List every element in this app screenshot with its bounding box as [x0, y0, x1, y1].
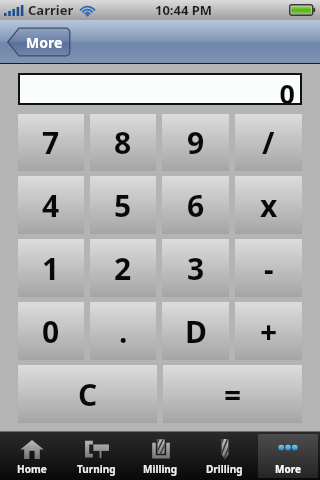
- staticText: -: [264, 248, 274, 289]
- button[interactable]: =: [163, 365, 302, 423]
- button[interactable]: 8: [90, 114, 156, 171]
- staticText: 5: [114, 185, 132, 226]
- staticText: /: [262, 122, 275, 163]
- staticText: .: [119, 311, 128, 352]
- staticText: 6: [187, 185, 205, 226]
- button[interactable]: x: [235, 176, 302, 234]
- button[interactable]: .: [90, 302, 156, 360]
- button[interactable]: Turning: [66, 434, 126, 478]
- staticText: Home: [17, 462, 47, 476]
- staticText: More: [275, 462, 301, 476]
- staticText: 0: [42, 311, 60, 352]
- staticText: x: [260, 185, 278, 226]
- staticText: =: [224, 374, 242, 415]
- button[interactable]: 3: [162, 239, 229, 297]
- staticText: Drilling: [206, 462, 243, 476]
- button[interactable]: 9: [162, 114, 229, 171]
- button[interactable]: Milling: [130, 434, 190, 478]
- button[interactable]: More: [7, 27, 71, 57]
- button[interactable]: 5: [90, 176, 156, 234]
- staticText: C: [78, 374, 98, 415]
- staticText: More: [26, 33, 63, 52]
- staticText: Turning: [77, 462, 116, 476]
- button[interactable]: 2: [90, 239, 156, 297]
- staticText: +: [260, 311, 278, 352]
- button[interactable]: 0: [18, 302, 84, 360]
- staticText: Carrier: [28, 1, 74, 19]
- staticText: 2: [114, 248, 132, 289]
- button[interactable]: 7: [18, 114, 84, 171]
- staticText: 3: [187, 248, 205, 289]
- staticText: 0: [279, 75, 295, 103]
- button[interactable]: Drilling: [194, 434, 254, 478]
- button[interactable]: D: [162, 302, 229, 360]
- staticText: 1: [42, 248, 60, 289]
- staticText: 9: [187, 122, 205, 163]
- button[interactable]: /: [235, 114, 302, 171]
- button[interactable]: 1: [18, 239, 84, 297]
- button[interactable]: +: [235, 302, 302, 360]
- button[interactable]: 4: [18, 176, 84, 234]
- button[interactable]: More: [258, 434, 318, 478]
- button[interactable]: 6: [162, 176, 229, 234]
- button[interactable]: Home: [2, 434, 62, 478]
- staticText: 4: [42, 185, 60, 226]
- staticText: Milling: [143, 462, 178, 476]
- button[interactable]: C: [18, 365, 157, 423]
- staticText: D: [185, 311, 207, 352]
- staticText: 10:44 PM: [155, 1, 213, 19]
- staticText: 8: [114, 122, 132, 163]
- staticText: 7: [42, 122, 60, 163]
- button[interactable]: -: [235, 239, 302, 297]
